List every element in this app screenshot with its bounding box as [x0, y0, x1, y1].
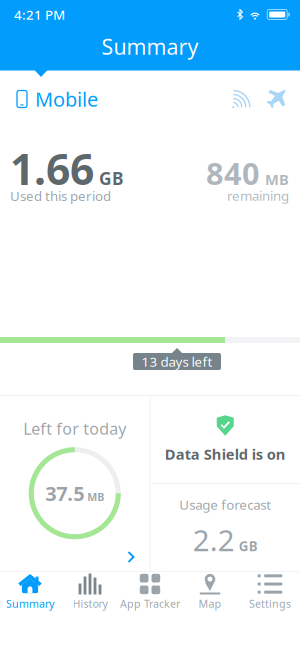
- button[interactable]: Mobile: [0, 78, 112, 120]
- staticText: Used this period: [10, 187, 111, 205]
- button[interactable]: Airplane mode: [259, 89, 290, 108]
- button[interactable]: Usage forecast: [150, 484, 300, 571]
- staticText: Left for today: [23, 418, 126, 439]
- button[interactable]: Map: [180, 571, 240, 612]
- button[interactable]: Summary: [0, 571, 60, 612]
- staticText: GB: [239, 537, 258, 555]
- staticText: Summary: [101, 32, 198, 61]
- button[interactable]: History: [60, 571, 120, 612]
- staticText: GB: [99, 167, 124, 190]
- staticText: Usage forecast: [179, 496, 271, 513]
- button[interactable]: App Tracker: [120, 571, 180, 612]
- staticText: MB: [265, 169, 289, 189]
- staticText: Data Shield is on: [165, 444, 286, 464]
- staticText: Map: [198, 596, 221, 611]
- staticText: 37.5: [45, 480, 84, 507]
- staticText: MB: [87, 490, 104, 504]
- button[interactable]: Settings: [240, 571, 300, 612]
- staticText: Mobile: [35, 86, 98, 112]
- staticText: 4:21 PM: [14, 6, 65, 23]
- staticText: 840: [206, 153, 260, 193]
- staticText: History: [72, 596, 107, 611]
- staticText: Settings: [249, 596, 291, 611]
- button[interactable]: Left for today: [0, 396, 149, 571]
- staticText: 2.2: [193, 520, 235, 559]
- staticText: 1.66: [10, 140, 94, 197]
- staticText: Summary: [6, 596, 54, 611]
- staticText: App Tracker: [120, 596, 180, 611]
- staticText: 13 days left: [141, 353, 212, 370]
- button[interactable]: Wi-Fi off: [228, 89, 255, 108]
- staticText: remaining: [227, 187, 289, 204]
- button[interactable]: Data Shield is on: [150, 396, 300, 483]
